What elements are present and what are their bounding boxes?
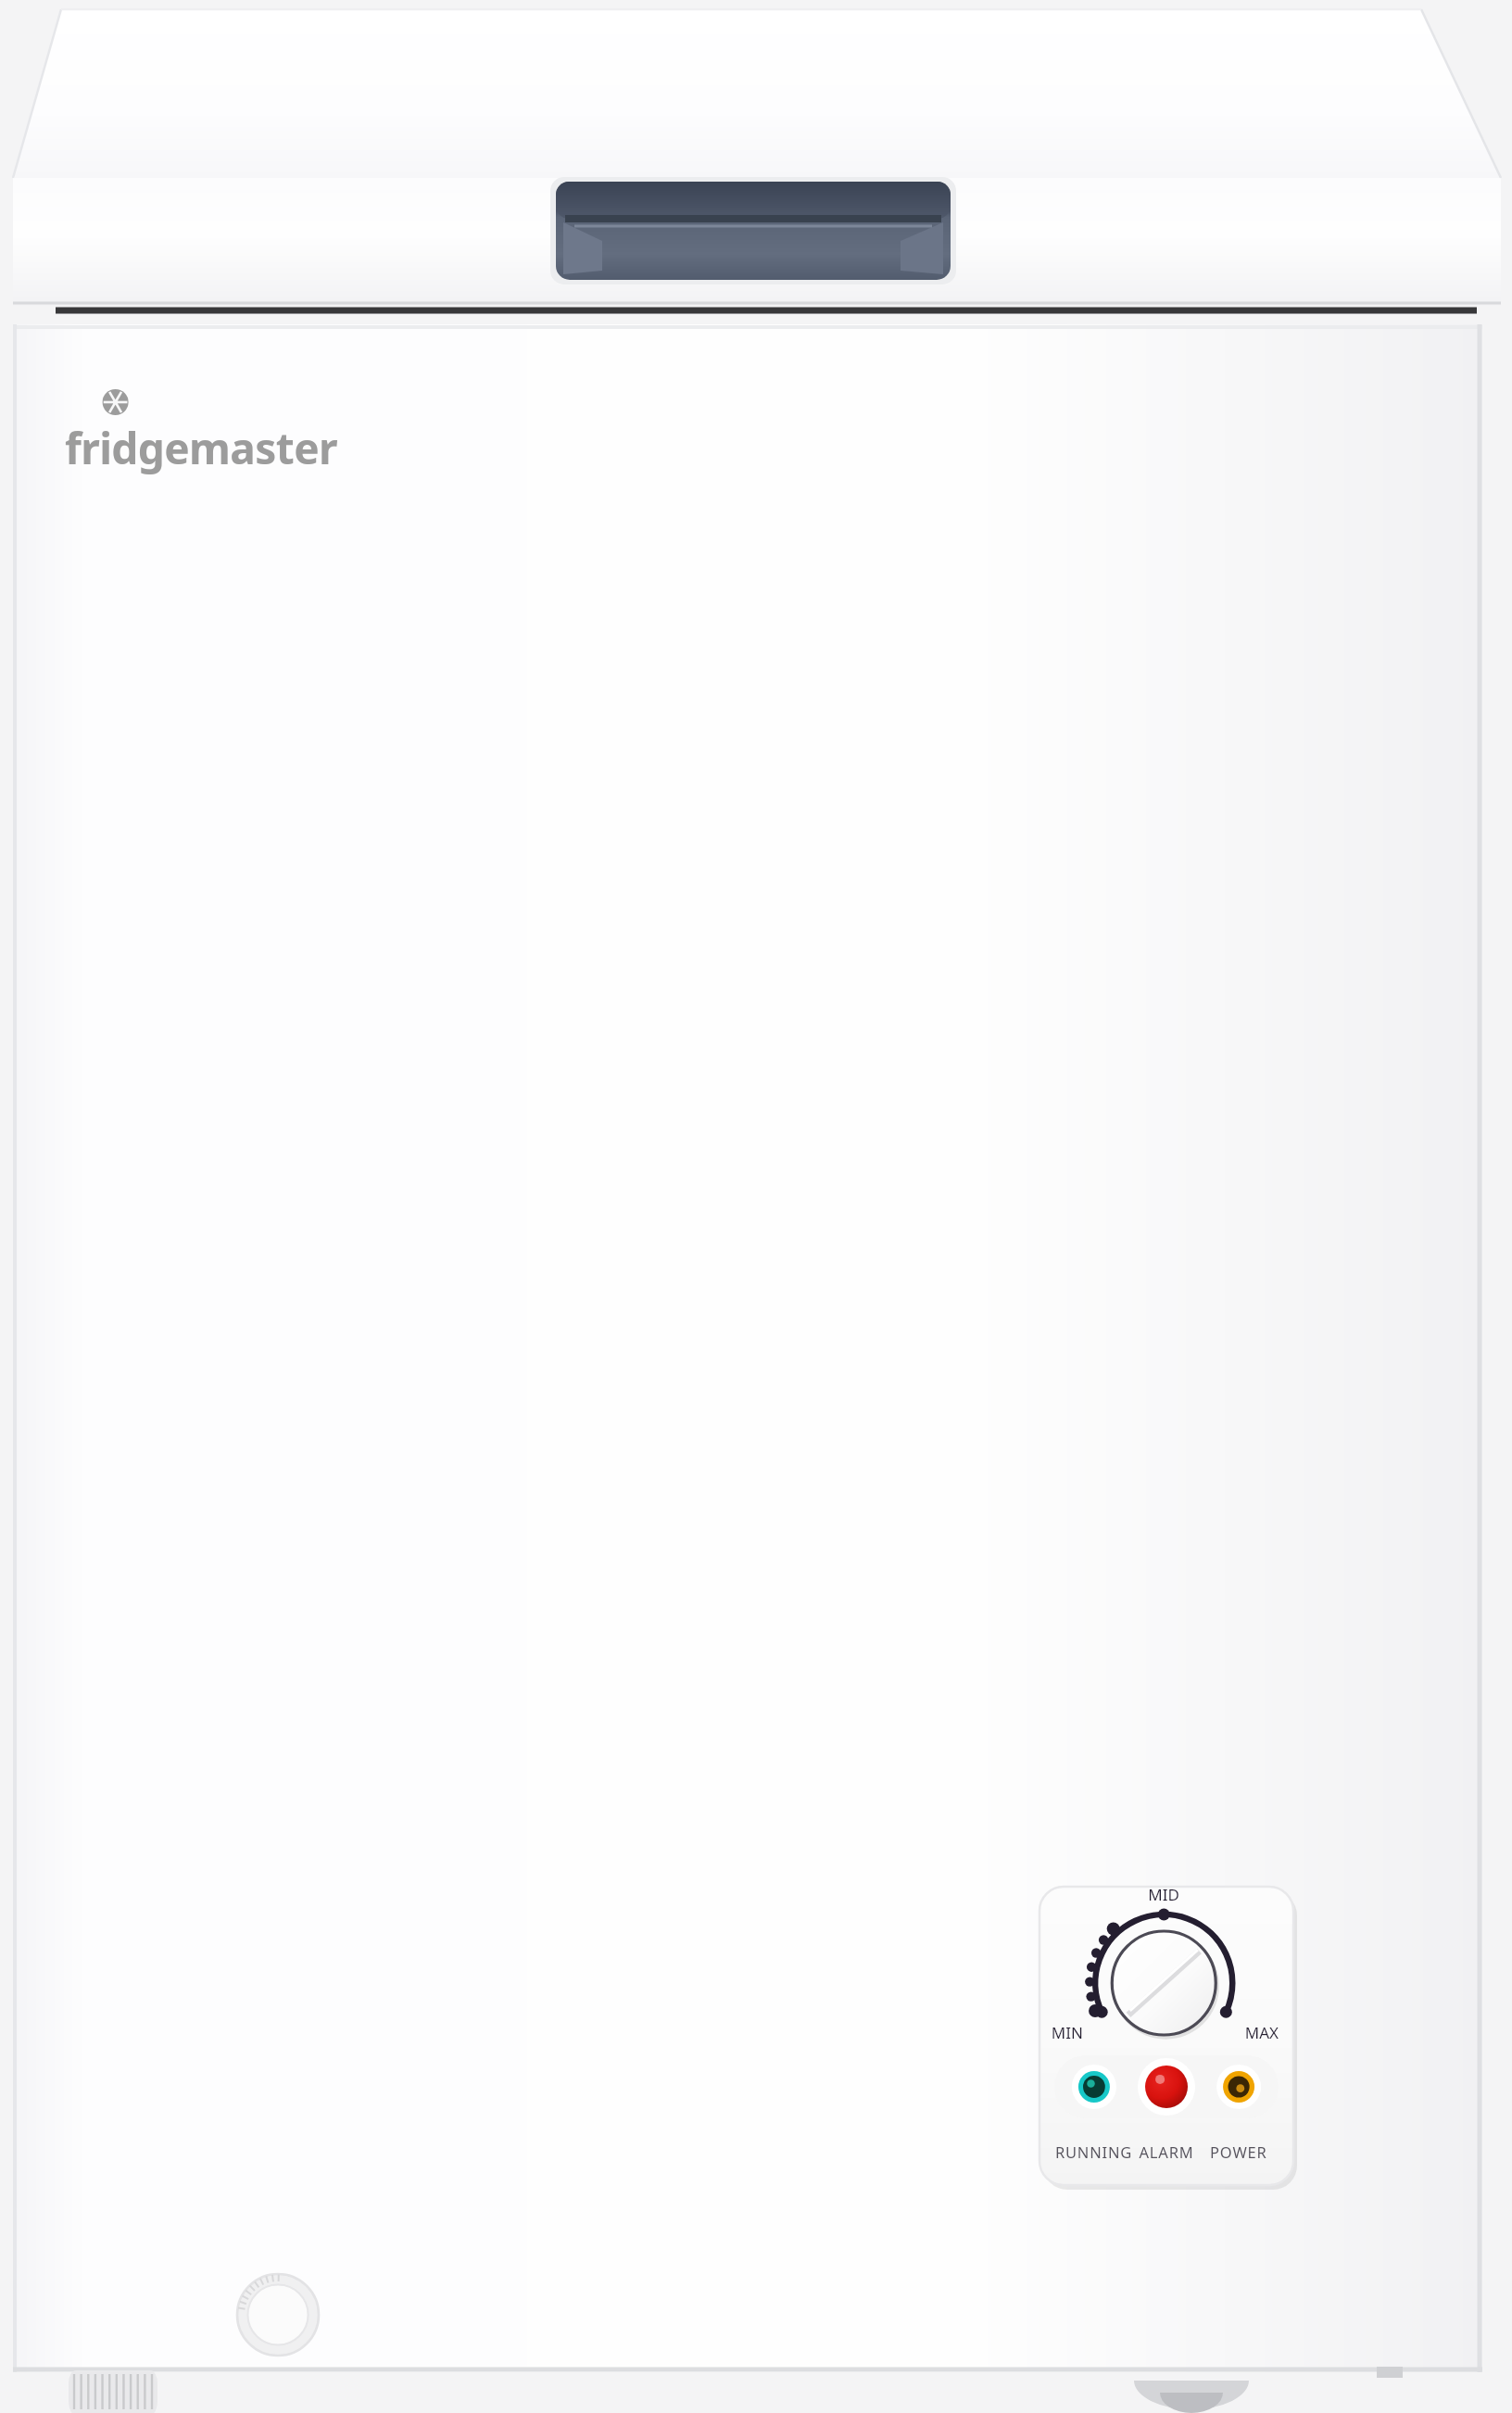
button[interactable]: Fridgemaster chest freezer product image	[0, 0, 1512, 2413]
